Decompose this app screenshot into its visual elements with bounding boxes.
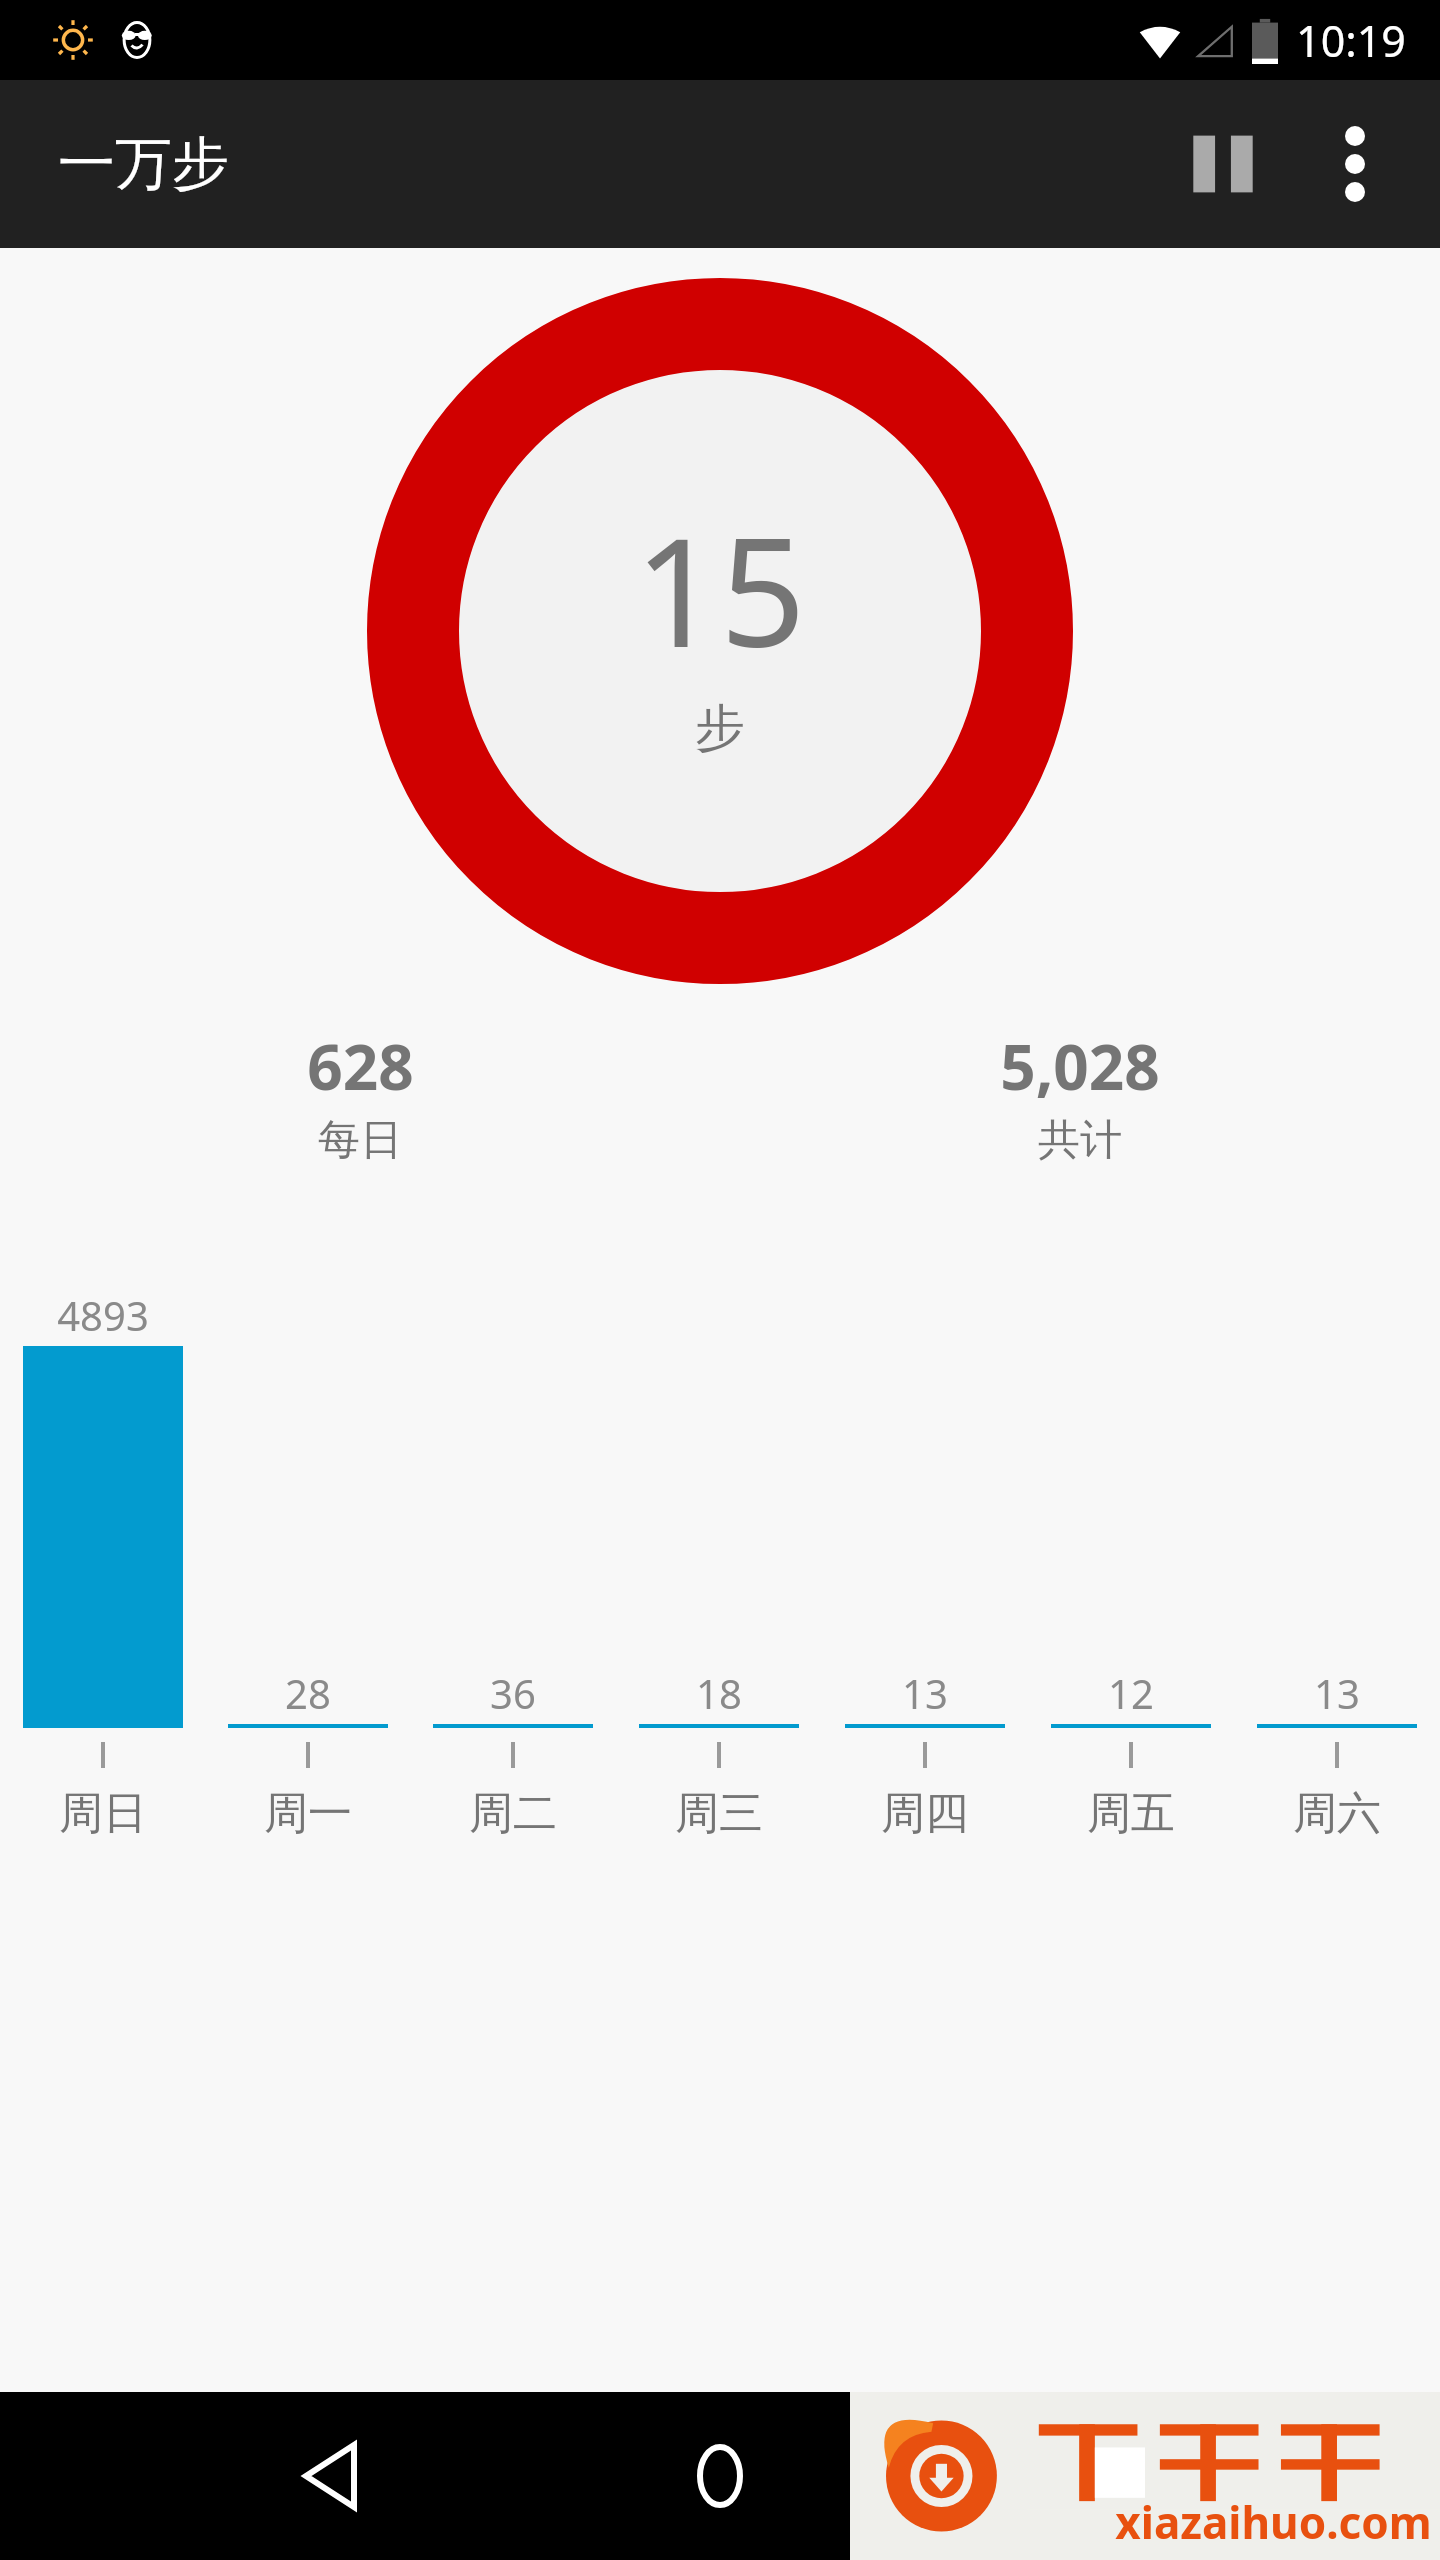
staticText: 周一 <box>264 1786 352 1841</box>
button[interactable]: Back <box>270 2416 390 2536</box>
button[interactable]: 13 <box>1234 1288 1440 1848</box>
button[interactable]: Home <box>660 2416 780 2536</box>
staticText: 13 <box>1314 1666 1360 1720</box>
button[interactable]: 28 <box>205 1288 410 1848</box>
button[interactable]: Pause <box>1168 109 1278 219</box>
staticText: 18 <box>696 1666 742 1720</box>
staticText: 周六 <box>1293 1786 1381 1841</box>
button[interactable]: 5,028 <box>720 1018 1440 1173</box>
staticText: 周二 <box>469 1786 557 1841</box>
staticText: 12 <box>1108 1666 1154 1720</box>
staticText: xiazaihuo.com <box>1115 2492 1432 2552</box>
button[interactable]: 4893 <box>0 1288 205 1848</box>
button[interactable]: 36 <box>410 1288 616 1848</box>
button[interactable]: 12 <box>1028 1288 1234 1848</box>
staticText: 步 <box>695 697 745 760</box>
staticText: 周四 <box>881 1786 969 1841</box>
button[interactable]: Recent apps <box>1050 2416 1170 2536</box>
staticText: 628 <box>307 1024 414 1108</box>
staticText: 4893 <box>57 1288 149 1342</box>
button[interactable]: 18 <box>616 1288 822 1848</box>
staticText: 共计 <box>1038 1114 1122 1167</box>
staticText: 周五 <box>1087 1786 1175 1841</box>
button[interactable]: 13 <box>822 1288 1028 1848</box>
staticText: 13 <box>902 1666 948 1720</box>
staticText: 一万步 <box>58 128 229 200</box>
staticText: 周三 <box>675 1786 763 1841</box>
staticText: 15 <box>634 487 806 691</box>
button[interactable]: 628 <box>0 1018 720 1173</box>
staticText: 28 <box>285 1666 331 1720</box>
button[interactable]: More options <box>1300 109 1410 219</box>
staticText: 36 <box>490 1666 536 1720</box>
staticText: 每日 <box>318 1114 402 1167</box>
staticText: 10:19 <box>1296 11 1406 70</box>
staticText: 周日 <box>59 1786 147 1841</box>
staticText: 5,028 <box>1000 1024 1160 1108</box>
